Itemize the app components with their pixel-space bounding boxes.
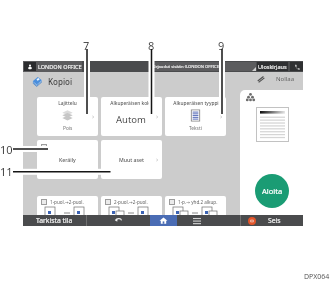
staticText: 8 xyxy=(148,38,155,53)
staticText: 1-puol.→2-puol. xyxy=(50,199,84,205)
button[interactable]: 1-puol.→2-puol. xyxy=(37,196,98,217)
staticText: Kopioi xyxy=(48,76,73,87)
staticText: 9 xyxy=(218,38,225,53)
staticText: 10 xyxy=(0,142,13,157)
staticText: Seis xyxy=(268,216,281,225)
staticText: Kirjaudut sisään (LONDON OFFICE) xyxy=(152,64,221,70)
button[interactable]: Muut aset xyxy=(101,140,162,179)
staticText: Alkuperäisen koko xyxy=(110,100,153,107)
button[interactable]: LONDON OFFICE xyxy=(23,61,82,72)
staticText: Nollaa xyxy=(276,75,295,83)
button[interactable]: Menu xyxy=(177,215,240,226)
button[interactable]: Seis xyxy=(241,215,303,226)
button[interactable]: Back xyxy=(87,215,150,226)
button[interactable]: Tarkista tila xyxy=(23,215,86,226)
staticText: Alkuperäisen tyyppi xyxy=(173,100,219,107)
staticText: 7 xyxy=(83,38,90,53)
staticText: LONDON OFFICE xyxy=(38,63,82,70)
staticText: Tarkista tila xyxy=(36,216,73,225)
staticText: Keräily xyxy=(59,156,76,163)
button[interactable]: Nollaa xyxy=(257,73,295,85)
button[interactable]: Call xyxy=(290,62,303,71)
staticText: Muut aset xyxy=(119,156,145,163)
staticText: Aloita xyxy=(262,186,283,196)
button[interactable]: Aloita xyxy=(255,174,289,208)
staticText: Autom xyxy=(116,113,147,126)
button[interactable]: 2-puol.→2-puol. xyxy=(101,196,162,217)
button[interactable]: Alkuperäisen tyyppi xyxy=(165,97,226,136)
staticText: Lajittelu xyxy=(58,100,77,107)
button[interactable]: Keräily xyxy=(37,140,98,179)
button[interactable]: Alkuperäisen koko xyxy=(101,97,162,136)
button[interactable]: Lajittelu xyxy=(37,97,98,136)
staticText: Teksti xyxy=(189,125,202,132)
staticText: 11 xyxy=(0,164,13,179)
button[interactable]: 1-p.→ yhd.2 alkup. xyxy=(165,196,226,217)
staticText: DPX064 xyxy=(304,272,330,282)
staticText: 2-puol.→2-puol. xyxy=(114,199,148,205)
staticText: 1-p.→ yhd.2 alkup. xyxy=(178,199,218,205)
staticText: Uloskirjaus xyxy=(258,63,287,70)
button[interactable]: Kirjaudut sisään (LONDON OFFICE) xyxy=(151,62,256,71)
staticText: Pois xyxy=(63,125,73,132)
button[interactable]: Uloskirjaus xyxy=(257,62,288,71)
button[interactable]: Home xyxy=(150,215,177,226)
